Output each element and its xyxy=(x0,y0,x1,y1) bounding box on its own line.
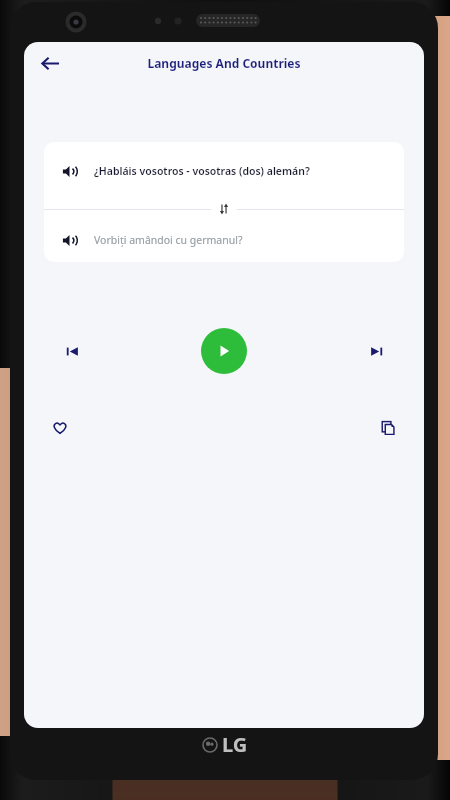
button[interactable]: Back xyxy=(30,43,70,83)
staticText: ¿Habláis vosotros - vosotras (dos) alemá… xyxy=(94,164,310,178)
button[interactable]: Copy xyxy=(370,410,406,446)
button[interactable]: Next xyxy=(356,331,396,371)
button[interactable]: Play source audio xyxy=(56,158,82,184)
button[interactable]: Swap languages xyxy=(211,200,237,218)
staticText: Languages And Countries xyxy=(147,55,301,71)
button[interactable]: Favorite xyxy=(42,410,78,446)
button[interactable]: Play source audio xyxy=(44,142,404,200)
button[interactable]: Play translation audio xyxy=(56,227,82,253)
button[interactable]: Previous xyxy=(52,331,92,371)
button[interactable]: Play xyxy=(201,328,247,374)
staticText: Vorbiți amândoi cu germanul? xyxy=(94,233,243,247)
button[interactable]: Play translation audio xyxy=(44,218,404,262)
staticText: LG xyxy=(222,731,248,758)
